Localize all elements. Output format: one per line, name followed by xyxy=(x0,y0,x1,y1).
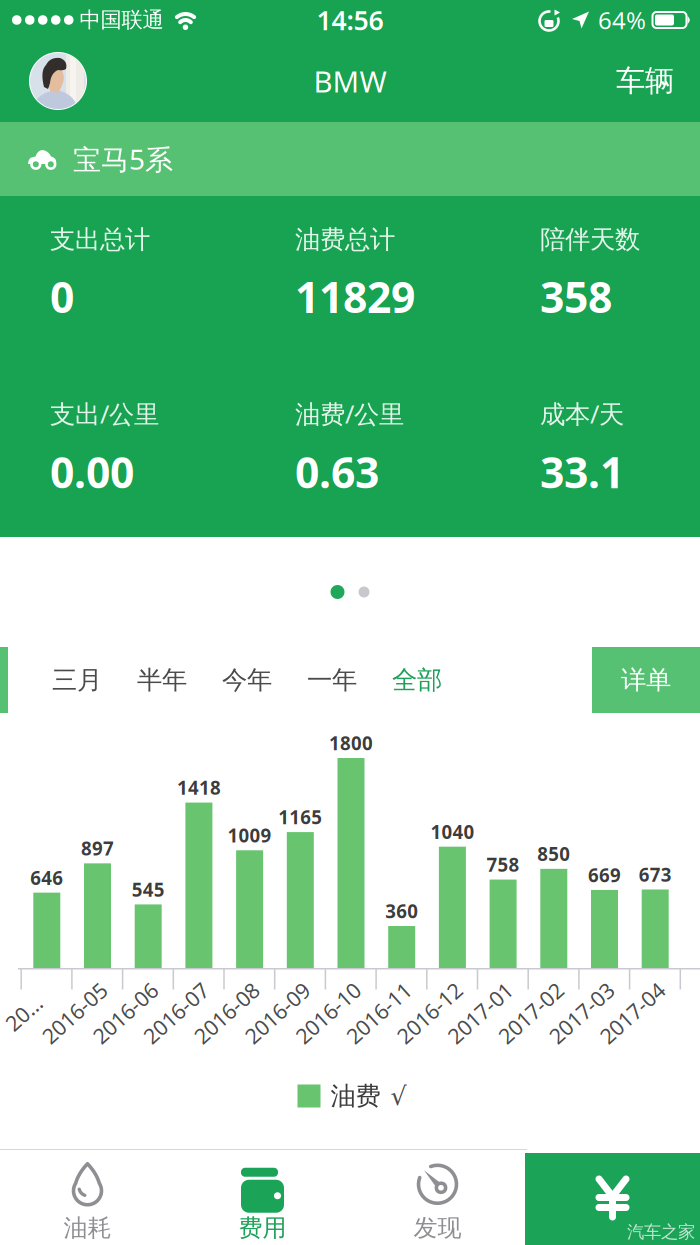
staticText: 2017-02 xyxy=(491,999,570,1027)
staticText: 1040 xyxy=(430,819,474,844)
staticText: 油费/公里 xyxy=(295,397,404,430)
staticText: 1800 xyxy=(329,731,373,755)
staticText: 669 xyxy=(588,863,621,887)
staticText: 发现 xyxy=(413,1213,461,1243)
button[interactable]: 三月 xyxy=(52,664,102,695)
staticText: 33.1 xyxy=(540,443,624,500)
staticText: 2017-03 xyxy=(542,999,621,1027)
staticText: 陪伴天数 xyxy=(540,224,640,255)
button[interactable]: 详单 xyxy=(592,647,700,713)
staticText: 897 xyxy=(81,836,114,861)
button[interactable]: 个人中心 xyxy=(29,52,87,110)
button[interactable]: 半年 xyxy=(137,664,187,695)
staticText: 11829 xyxy=(295,268,415,325)
staticText: 360 xyxy=(385,899,418,923)
staticText: 358 xyxy=(540,268,612,325)
staticText: 0 xyxy=(50,268,74,325)
staticText: 油耗 xyxy=(63,1213,111,1243)
button[interactable]: 今年 xyxy=(222,664,272,695)
staticText: 64% xyxy=(598,4,646,36)
staticText: 2016-08 xyxy=(187,999,266,1027)
staticText: 2016-12 xyxy=(390,999,469,1027)
staticText: 中国联通 xyxy=(79,7,163,33)
staticText: 2017-01 xyxy=(441,999,520,1027)
staticText: 1165 xyxy=(278,805,322,829)
staticText: 油费 xyxy=(330,1080,380,1111)
staticText: 三月 xyxy=(52,664,102,695)
staticText: 汽车之家 xyxy=(627,1221,695,1243)
staticText: 545 xyxy=(132,877,165,902)
staticText: 费用 xyxy=(238,1213,286,1243)
button[interactable]: 车辆 xyxy=(616,63,674,99)
staticText: 支出/公里 xyxy=(50,397,159,430)
staticText: 1009 xyxy=(228,823,272,848)
staticText: 646 xyxy=(30,865,63,890)
button[interactable]: 费用 xyxy=(175,1150,350,1245)
button[interactable]: 宝马5系 xyxy=(0,122,700,196)
staticText: 支出总计 xyxy=(50,224,150,255)
button[interactable]: 全部 xyxy=(392,664,442,695)
button[interactable]: 油耗 xyxy=(0,1150,175,1245)
staticText: 详单 xyxy=(621,664,671,695)
staticText: 758 xyxy=(487,852,520,877)
staticText: 14:56 xyxy=(316,2,383,38)
staticText: BMW xyxy=(313,61,386,100)
staticText: 2016-07 xyxy=(136,999,215,1027)
staticText: 成本/天 xyxy=(540,397,624,430)
button[interactable]: 记一笔 xyxy=(525,1153,700,1245)
button[interactable]: 发现 xyxy=(350,1150,525,1245)
staticText: 2016-06 xyxy=(86,999,165,1027)
staticText: 今年 xyxy=(222,664,272,695)
button[interactable]: 一年 xyxy=(307,664,357,695)
staticText: 0.00 xyxy=(50,443,134,500)
staticText: 2017-04 xyxy=(593,999,672,1027)
staticText: 0.63 xyxy=(295,443,379,500)
staticText: 1418 xyxy=(177,775,221,800)
staticText: 全部 xyxy=(392,664,442,695)
staticText: 673 xyxy=(639,862,672,887)
staticText: 半年 xyxy=(137,664,187,695)
staticText: 车辆 xyxy=(616,63,674,99)
staticText: 2016-10 xyxy=(288,999,367,1027)
staticText: 2016-09 xyxy=(238,999,317,1027)
staticText: 850 xyxy=(537,841,570,866)
staticText: 一年 xyxy=(307,664,357,695)
staticText: 2016-11 xyxy=(339,999,418,1027)
staticText: 20… xyxy=(3,999,44,1027)
staticText: 油费总计 xyxy=(295,224,395,255)
staticText: 宝马5系 xyxy=(73,140,173,178)
staticText: 2016-05 xyxy=(35,999,114,1027)
staticText: √ xyxy=(390,1082,406,1110)
